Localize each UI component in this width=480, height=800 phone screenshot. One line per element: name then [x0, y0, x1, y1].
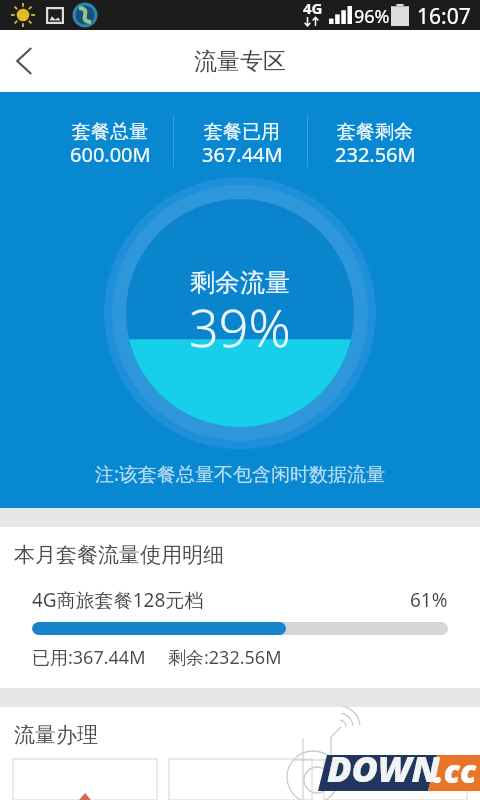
staticText: 16:07 [417, 2, 471, 31]
button[interactable]: 流量查询 [324, 759, 467, 800]
staticText: 剩余:232.56M [168, 645, 282, 670]
staticText: 套餐总量 [72, 120, 148, 144]
button[interactable]: 4G商旅套餐128元档 [0, 587, 480, 613]
button[interactable]: Back [0, 30, 48, 92]
staticText: 600.00M [70, 141, 151, 168]
staticText: 4G [303, 0, 323, 18]
staticText: 套餐已用 [204, 120, 280, 144]
staticText: 注:该套餐总量不包含闲时数据流量 [0, 461, 480, 487]
staticText: 已用:367.44M [32, 645, 146, 670]
staticText: 本月套餐流量使用明细 [14, 542, 224, 568]
staticText: 4G商旅套餐128元档 [32, 587, 204, 613]
staticText: DOWN [327, 744, 440, 793]
staticText: 剩余流量 [190, 267, 290, 298]
staticText: 61% [410, 587, 448, 613]
button[interactable]: 流量包订购 [13, 759, 157, 800]
staticText: 流量办理 [14, 722, 98, 748]
staticText: 流量专区 [194, 47, 286, 76]
staticText: 39% [189, 291, 291, 362]
staticText: 232.56M [335, 141, 416, 168]
staticText: 96% [354, 4, 390, 29]
staticText: 367.44M [202, 141, 283, 168]
staticText: 套餐剩余 [337, 120, 413, 144]
button[interactable]: 流量赠送 [169, 759, 312, 800]
staticText: .cc [434, 749, 477, 793]
